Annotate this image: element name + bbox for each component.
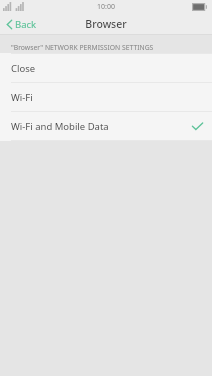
staticText: Wi-Fi and Mobile Data xyxy=(11,120,109,133)
staticText: Wi-Fi xyxy=(11,91,33,104)
staticText: Back xyxy=(15,18,37,31)
other: Selected xyxy=(192,122,203,131)
staticText: "Browser" NETWORK PERMISSION SETTINGS xyxy=(11,43,154,52)
staticText: Browser xyxy=(85,17,127,31)
button[interactable]: Wi-Fi xyxy=(0,83,212,112)
staticText: 10:00 xyxy=(97,2,115,12)
button[interactable]: Wi-Fi and Mobile Data xyxy=(0,112,212,141)
staticText: Close xyxy=(11,62,36,75)
button[interactable]: Close xyxy=(0,54,212,83)
button[interactable]: Back xyxy=(0,13,45,35)
